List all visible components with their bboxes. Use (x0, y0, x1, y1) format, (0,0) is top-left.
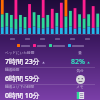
staticText: 6時間 59分 (5, 74, 40, 84)
button[interactable] (0, 0, 100, 36)
staticText: 7時間 23分 (5, 57, 40, 67)
button[interactable]: 睡眠時間 (0, 68, 100, 84)
button[interactable]: メモ (76, 91, 85, 100)
staticText: 睡眠時間 (5, 68, 20, 73)
staticText: 量 (78, 51, 82, 56)
staticText: 0時間 10分 (5, 91, 40, 100)
staticText: 気分 (76, 69, 84, 74)
button[interactable] (0, 42, 100, 48)
button[interactable]: 睡眠より下の時間 (0, 85, 100, 100)
button[interactable]: 気分 (76, 75, 85, 84)
staticText: メモ (76, 85, 84, 90)
staticText: 82% (71, 57, 85, 67)
staticText: 睡眠より下の時間 (5, 85, 35, 90)
staticText: ベッドにいた時間 (5, 51, 35, 56)
button[interactable]: ベッドにいた時間 (0, 51, 100, 67)
